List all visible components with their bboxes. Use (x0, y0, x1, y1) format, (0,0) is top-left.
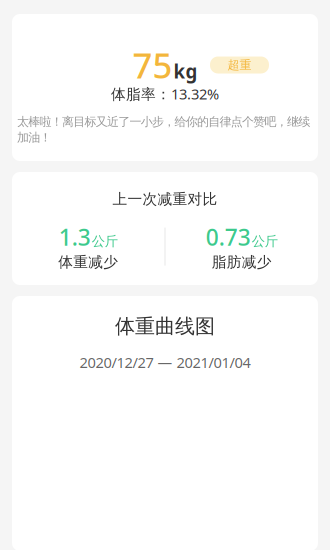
staticText: 超重 (227, 58, 251, 72)
staticText: 75 (132, 42, 172, 88)
staticText: 1.3 (59, 222, 91, 252)
staticText: 上一次减重对比 (112, 190, 217, 208)
staticText: kg (173, 59, 197, 84)
staticText: 公斤 (92, 233, 118, 250)
staticText: 脂肪减少 (212, 253, 272, 271)
staticText: 体重曲线图 (115, 314, 215, 339)
staticText: 0.73 (206, 222, 251, 252)
staticText: 2020/12/27 — 2021/01/04 (79, 353, 250, 372)
staticText: 体重减少 (58, 253, 118, 271)
staticText: 体脂率：13.32% (111, 84, 219, 103)
staticText: 太棒啦！离目标又近了一小步，给你的自律点个赞吧，继续 加油！ (17, 114, 310, 145)
staticText: 公斤 (252, 233, 278, 250)
